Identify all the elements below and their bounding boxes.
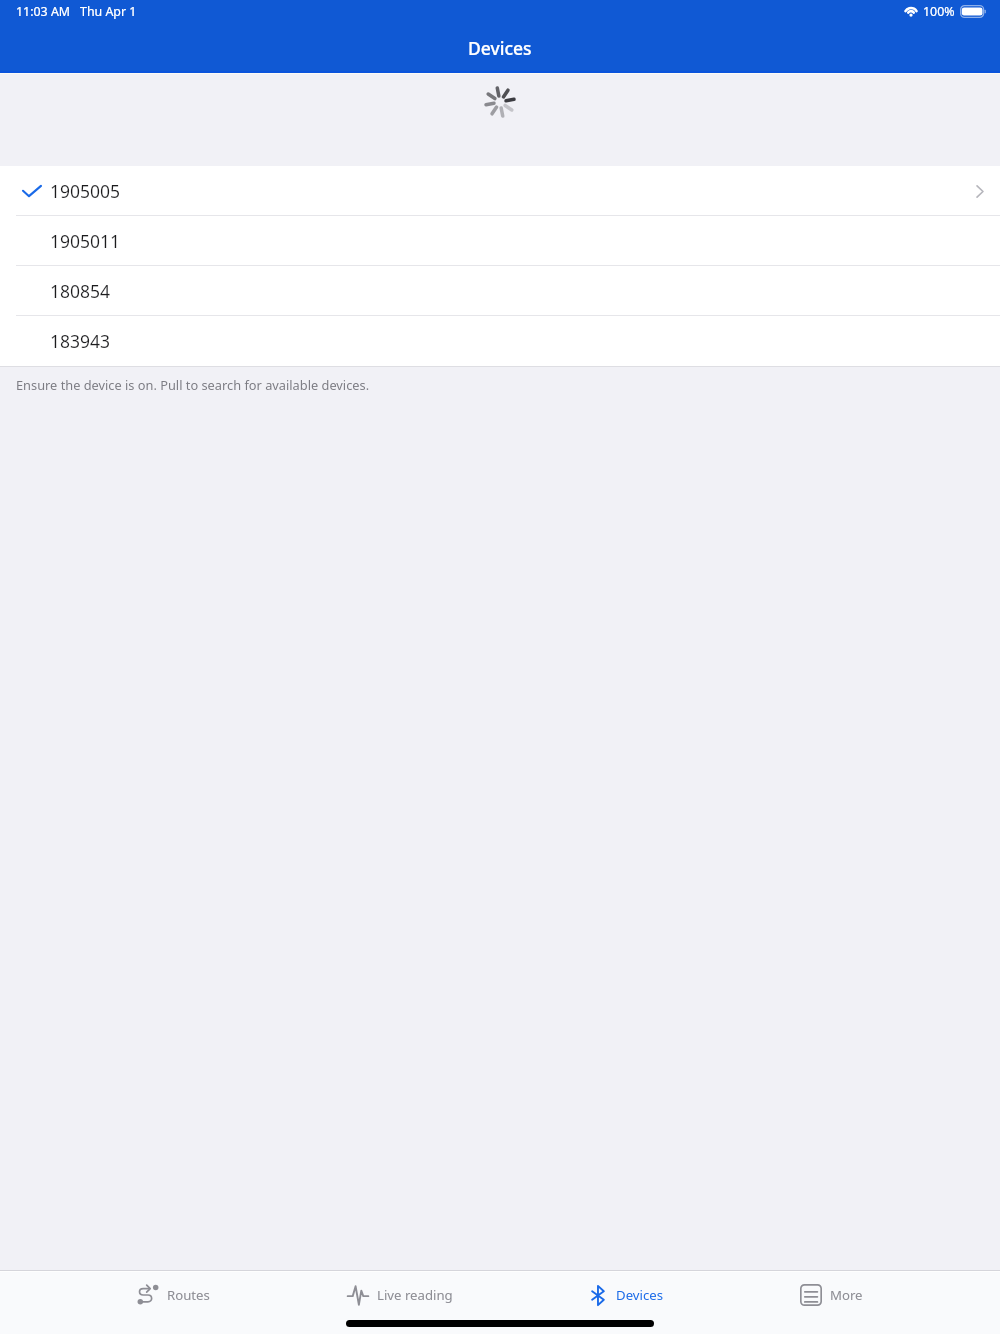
button[interactable]: Live reading xyxy=(347,1270,453,1320)
staticText: 180854 xyxy=(50,279,111,303)
staticText: 100% xyxy=(923,3,955,20)
staticText: Thu Apr 1 xyxy=(80,3,137,20)
other: Device details xyxy=(976,185,984,198)
staticText: 183943 xyxy=(50,329,111,353)
button[interactable]: 183943 xyxy=(0,316,1000,366)
staticText: Devices xyxy=(616,1286,663,1304)
staticText: Ensure the device is on. Pull to search … xyxy=(16,376,370,393)
button[interactable]: 180854 xyxy=(0,266,1000,316)
button[interactable]: More xyxy=(800,1270,863,1320)
button[interactable]: Routes xyxy=(137,1270,210,1320)
staticText: Devices xyxy=(468,36,532,60)
button[interactable]: 1905005 xyxy=(0,166,1000,216)
button[interactable]: 1905011 xyxy=(0,216,1000,266)
staticText: 11:03 AM xyxy=(16,3,71,20)
staticText: More xyxy=(830,1286,863,1304)
staticText: 1905005 xyxy=(50,179,121,203)
button[interactable]: Devices xyxy=(591,1270,663,1320)
staticText: Routes xyxy=(167,1286,210,1304)
staticText: Live reading xyxy=(377,1286,453,1304)
staticText: 1905011 xyxy=(50,229,121,253)
